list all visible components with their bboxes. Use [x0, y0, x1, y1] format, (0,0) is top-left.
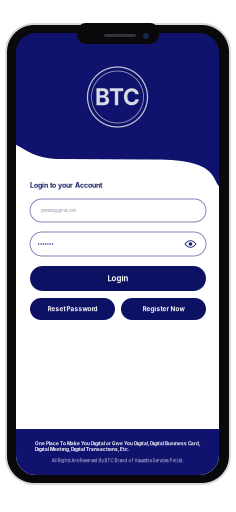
staticText: Register Now — [142, 305, 184, 313]
staticText: Login — [107, 274, 128, 283]
staticText: johndoe@gmail.com — [41, 208, 77, 213]
button[interactable]: Login — [30, 266, 206, 291]
staticText: BTC — [95, 83, 140, 111]
staticText: One Place To Make You Digital or Give Yo… — [35, 441, 200, 452]
button[interactable]: Reset Password — [30, 298, 115, 320]
button[interactable]: Register Now — [121, 298, 206, 320]
staticText: All Rights Are Reserved By BTC Brand of … — [51, 458, 183, 463]
staticText: Login to your Account — [30, 181, 103, 189]
staticText: Reset Password — [47, 305, 97, 313]
